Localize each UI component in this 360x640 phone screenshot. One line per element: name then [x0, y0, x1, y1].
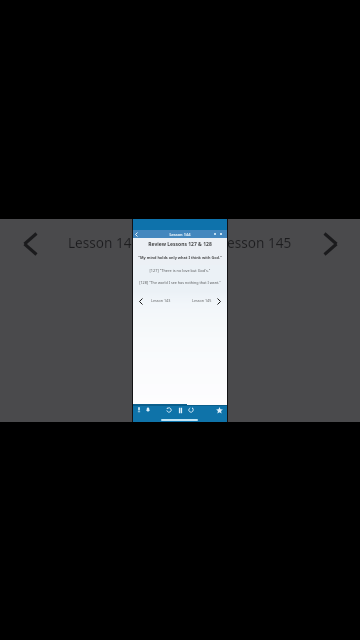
button[interactable]: Pause	[177, 407, 184, 415]
staticText: "My mind holds only what I think with Go…	[132, 255, 228, 260]
button[interactable]: Lesson 145	[220, 233, 292, 252]
button[interactable]: Lesson 143	[151, 298, 171, 303]
staticText: Lesson 144	[132, 232, 228, 237]
button[interactable]: Previous lesson	[16, 224, 44, 264]
button[interactable]: Lesson 145	[192, 298, 212, 303]
button[interactable]: Previous lesson	[138, 296, 144, 306]
button[interactable]: Microphone	[136, 406, 142, 414]
button[interactable]: Notifications	[145, 406, 151, 414]
staticText: Review Lessons 127 & 128	[132, 241, 228, 248]
button[interactable]: Back	[134, 231, 138, 237]
button[interactable]: Lesson 145	[68, 233, 140, 252]
button[interactable]: Rewind	[166, 407, 172, 413]
button[interactable]: Next lesson	[216, 296, 222, 306]
staticText: [128] "The world I see has nothing that …	[132, 280, 228, 285]
button[interactable]: Next lesson	[316, 224, 344, 264]
button[interactable]: Forward	[188, 407, 194, 413]
button[interactable]: Favourite	[216, 407, 223, 414]
staticText: [127] "There is no love but God's."	[132, 268, 228, 273]
